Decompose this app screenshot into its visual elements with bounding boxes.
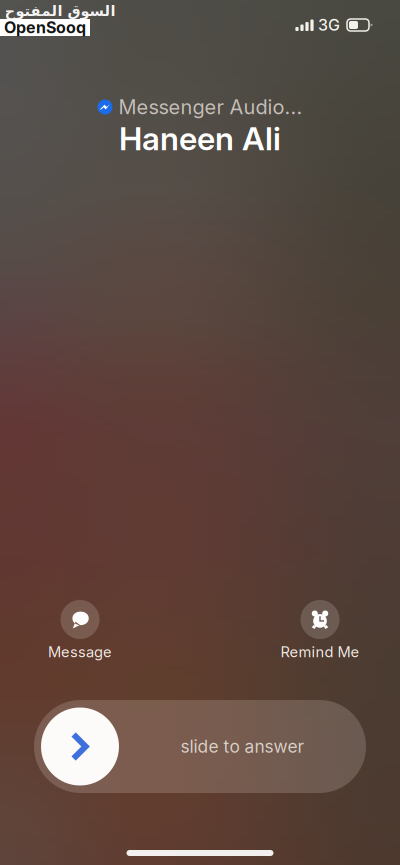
staticText: Messenger Audio... bbox=[118, 95, 302, 119]
staticText: Haneen Ali bbox=[119, 119, 281, 158]
staticText: السوق المفتوح bbox=[4, 2, 115, 20]
staticText: Message bbox=[48, 643, 112, 661]
staticText: slide to answer bbox=[180, 736, 304, 757]
staticText: 3G bbox=[318, 15, 340, 35]
button[interactable]: Message bbox=[20, 600, 140, 660]
staticText: OpenSooq bbox=[4, 18, 86, 37]
button[interactable]: Remind Me bbox=[260, 600, 380, 660]
button[interactable]: slide to answer bbox=[34, 700, 366, 793]
staticText: Remind Me bbox=[280, 643, 359, 661]
